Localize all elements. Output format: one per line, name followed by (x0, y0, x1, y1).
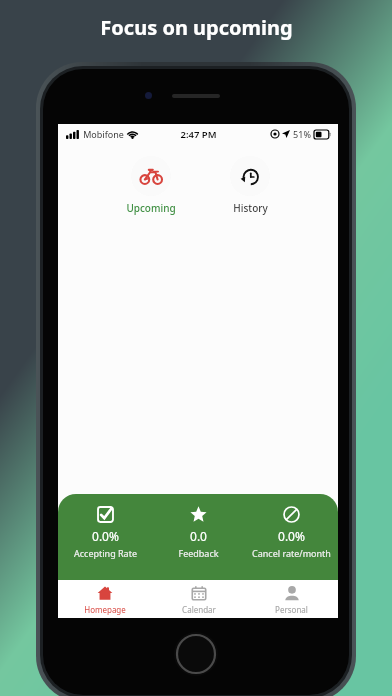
staticText: 0.0% (278, 528, 305, 544)
staticText: Homepage (84, 604, 126, 615)
button[interactable]: Calendar (152, 580, 245, 618)
button[interactable]: Personal (245, 580, 338, 618)
button[interactable]: Homepage (58, 580, 152, 618)
button[interactable]: 0.0% (58, 506, 152, 559)
staticText: Feedback (178, 547, 219, 559)
staticText: Personal (275, 604, 308, 615)
staticText: Focus on upcoming (100, 14, 293, 41)
staticText: Calendar (182, 604, 216, 615)
staticText: Cancel rate/month (252, 547, 331, 559)
button[interactable]: History (224, 154, 276, 217)
staticText: Accepting Rate (74, 547, 137, 559)
staticText: 51% (293, 128, 311, 140)
staticText: 0.0 (190, 528, 207, 544)
button[interactable]: Upcoming (120, 154, 182, 217)
staticText: Upcoming (126, 201, 176, 215)
staticText: 0.0% (92, 528, 119, 544)
staticText: Mobifone (83, 128, 124, 140)
button[interactable]: 0.0 (152, 506, 245, 559)
staticText: History (233, 201, 268, 215)
button[interactable]: 0.0% (245, 506, 338, 559)
staticText: 2:47 PM (180, 128, 217, 141)
